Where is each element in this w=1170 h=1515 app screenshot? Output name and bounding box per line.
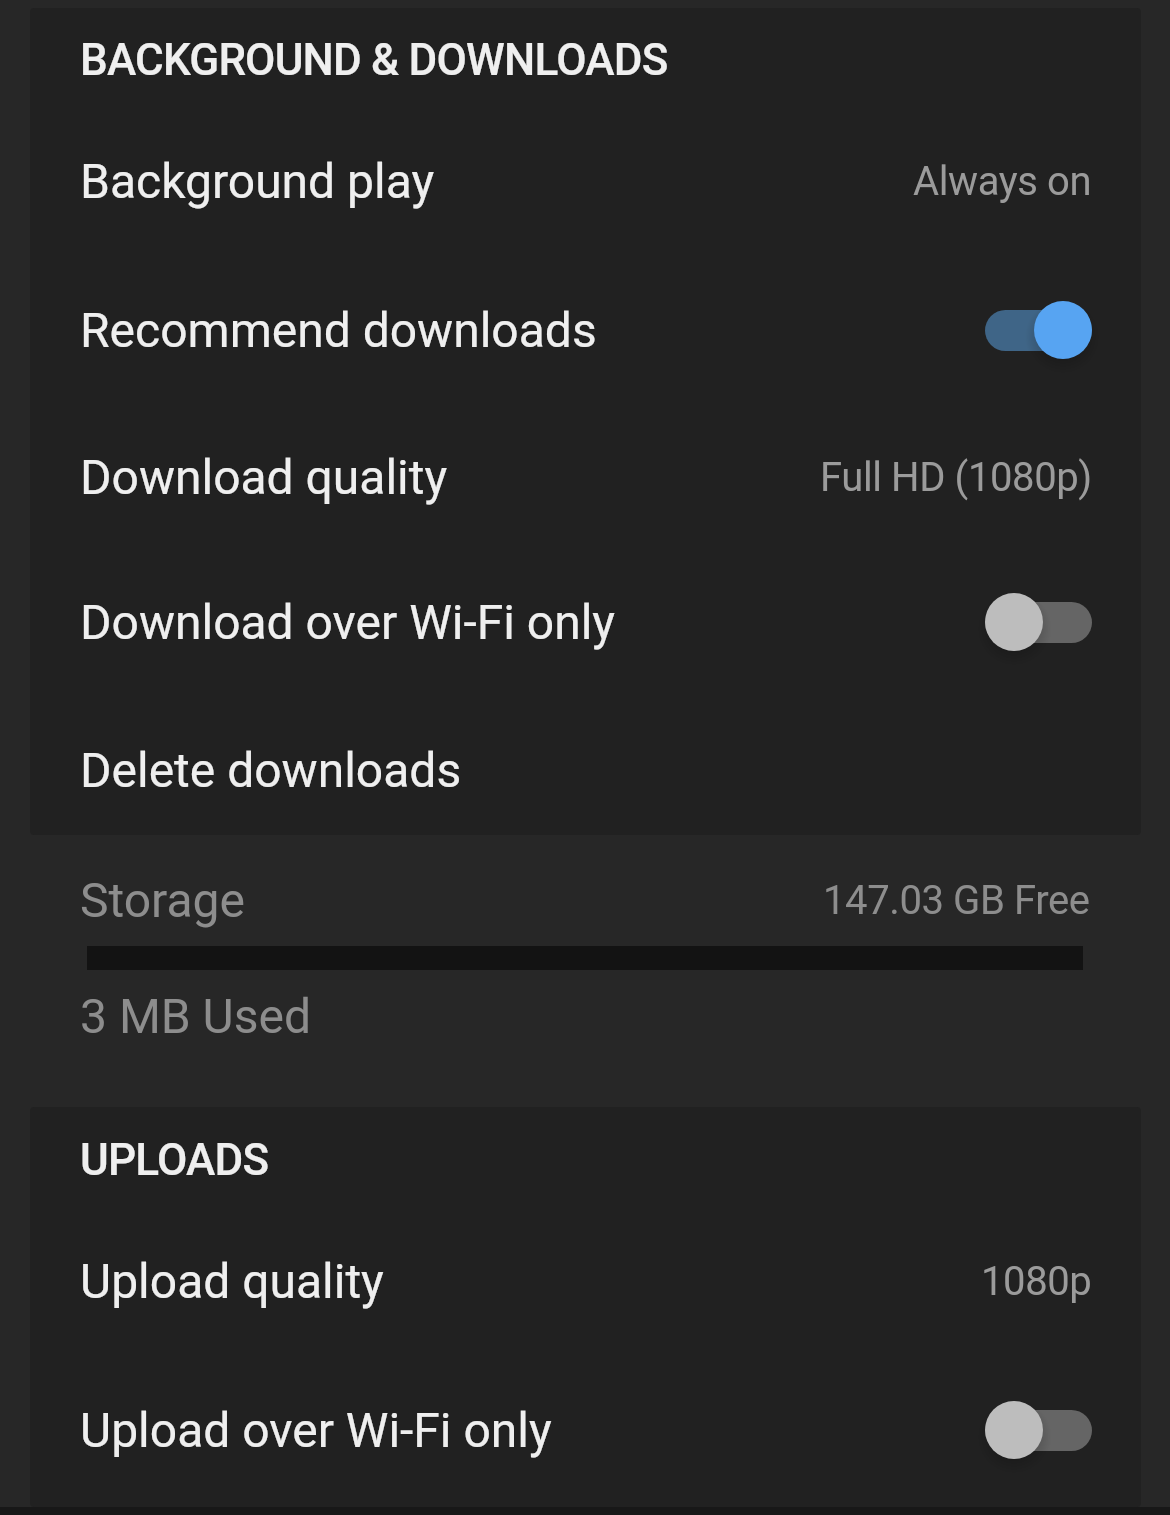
staticText: Upload quality [80, 1253, 384, 1309]
staticText: 1080p [981, 1258, 1092, 1305]
button[interactable]: UPLOADS [30, 1107, 1141, 1234]
staticText: Storage [80, 872, 245, 928]
staticText: Delete downloads [80, 742, 462, 798]
staticText: Always on [913, 158, 1092, 205]
button[interactable]: Upload quality [30, 1207, 1141, 1355]
staticText: Upload over Wi-Fi only [80, 1402, 552, 1458]
button[interactable]: Recommend downloads [30, 256, 1141, 404]
staticText: Background play [80, 153, 435, 209]
button[interactable]: Background play [30, 107, 1141, 255]
button[interactable]: Download quality [30, 403, 1141, 551]
button[interactable]: BACKGROUND & DOWNLOADS [30, 8, 1141, 134]
button[interactable]: Delete downloads [30, 696, 1141, 835]
button[interactable]: Download over Wi-Fi only [30, 548, 1141, 696]
staticText: Download over Wi-Fi only [80, 594, 616, 650]
staticText: UPLOADS [80, 1134, 269, 1186]
staticText: Download quality [80, 449, 448, 505]
staticText: 3 MB Used [80, 988, 312, 1044]
staticText: Full HD (1080p) [820, 454, 1092, 501]
button[interactable]: Upload over Wi-Fi only [30, 1356, 1141, 1504]
staticText: 147.03 GB Free [823, 877, 1090, 924]
staticText: Recommend downloads [80, 302, 597, 358]
staticText: BACKGROUND & DOWNLOADS [80, 34, 668, 86]
